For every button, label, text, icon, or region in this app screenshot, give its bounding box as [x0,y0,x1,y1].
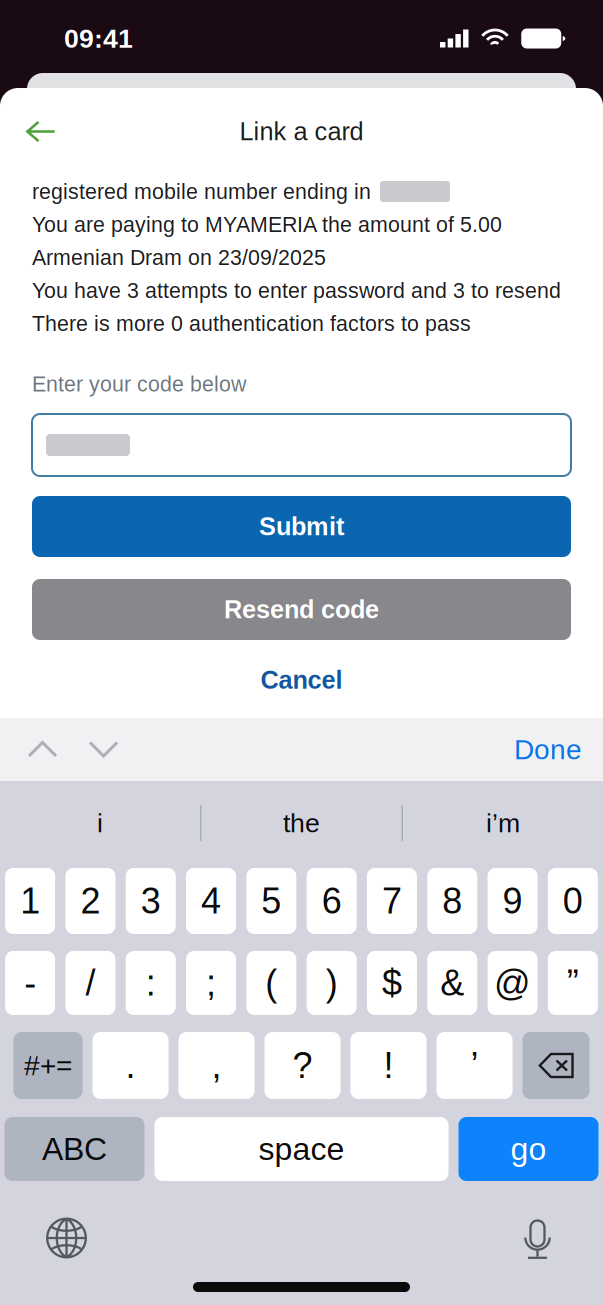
staticText: i [97,808,103,838]
button[interactable]: . [92,1032,168,1099]
button[interactable]: 0 [548,868,598,934]
button[interactable]: Submit [32,496,571,557]
staticText: ! [383,1045,393,1086]
staticText: Link a card [239,117,363,146]
staticText: ) [326,963,338,1003]
button[interactable]: - [5,951,55,1015]
button[interactable]: , [178,1032,254,1099]
button[interactable]: ( [246,951,296,1015]
button[interactable]: i [0,781,200,865]
button[interactable]: ) [307,951,357,1015]
staticText: Cancel [260,666,342,694]
button[interactable]: space [154,1117,448,1181]
staticText: 3 [141,881,161,921]
button[interactable]: 3 [126,868,176,934]
staticText: #+= [24,1050,72,1081]
staticText: Submit [259,512,344,541]
staticText: , [211,1045,221,1086]
button[interactable]: ” [548,951,598,1015]
staticText: ; [206,963,216,1003]
staticText: Armenian Dram on 23/09/2025 [32,246,326,269]
button[interactable]: 1 [5,868,55,934]
staticText: 6 [322,881,342,921]
button[interactable]: the [201,781,401,865]
staticText: ABC [42,1131,107,1167]
button[interactable]: ABC [4,1117,144,1181]
staticText: 2 [80,881,100,921]
staticText: Enter your code below [32,372,246,396]
staticText: ? [292,1045,312,1086]
staticText: & [440,963,464,1003]
staticText: There is more 0 authentication factors t… [32,312,471,335]
button[interactable]: @ [488,951,538,1015]
button[interactable]: / [65,951,115,1015]
staticText: . [125,1045,135,1086]
staticText: You are paying to MYAMERIA the amount of… [32,213,502,236]
button[interactable]: ! [350,1032,426,1099]
staticText: - [24,963,36,1003]
button[interactable]: Previous field [12,718,73,781]
staticText: $ [382,963,402,1003]
button[interactable]: 4 [186,868,236,934]
staticText: registered mobile number ending in [32,180,371,203]
staticText: ” [567,963,579,1003]
button[interactable]: ? [264,1032,340,1099]
staticText: : [146,963,156,1003]
button[interactable]: #+= [13,1032,82,1099]
button[interactable]: go [458,1117,598,1181]
button[interactable]: 5 [246,868,296,934]
button[interactable]: Next keyboard [46,1217,87,1258]
staticText: Done [514,734,582,765]
button[interactable]: 7 [367,868,417,934]
staticText: i’m [486,808,520,838]
button[interactable]: 6 [307,868,357,934]
staticText: 1 [20,881,40,921]
button[interactable]: & [427,951,477,1015]
button[interactable]: 2 [65,868,115,934]
button[interactable]: ’ [436,1032,512,1099]
staticText: 0 [563,881,583,921]
staticText: 7 [382,881,402,921]
staticText: Resend code [224,595,379,624]
button[interactable]: Delete [522,1032,589,1099]
button[interactable]: Dictation [524,1216,551,1260]
staticText: the [283,808,320,838]
button[interactable]: Next field [73,718,134,781]
button[interactable]: $ [367,951,417,1015]
staticText: go [510,1131,546,1167]
staticText: ’ [470,1045,478,1086]
staticText: @ [494,963,531,1003]
staticText: 9 [503,881,523,921]
button[interactable]: i’m [403,781,603,865]
button[interactable]: 9 [488,868,538,934]
staticText: space [258,1131,344,1167]
staticText: 4 [201,881,221,921]
button[interactable]: 8 [427,868,477,934]
staticText: 5 [261,881,281,921]
button[interactable]: Cancel [32,656,571,704]
button[interactable]: Back [0,91,82,172]
staticText: 8 [442,881,462,921]
staticText: You have 3 attempts to enter password an… [32,279,561,302]
button[interactable]: : [126,951,176,1015]
button[interactable]: ; [186,951,236,1015]
staticText: / [85,963,95,1003]
staticText: ( [265,963,277,1003]
button[interactable]: Resend code [32,579,571,640]
button[interactable]: Done [482,718,582,781]
staticText: 09:41 [64,24,133,53]
